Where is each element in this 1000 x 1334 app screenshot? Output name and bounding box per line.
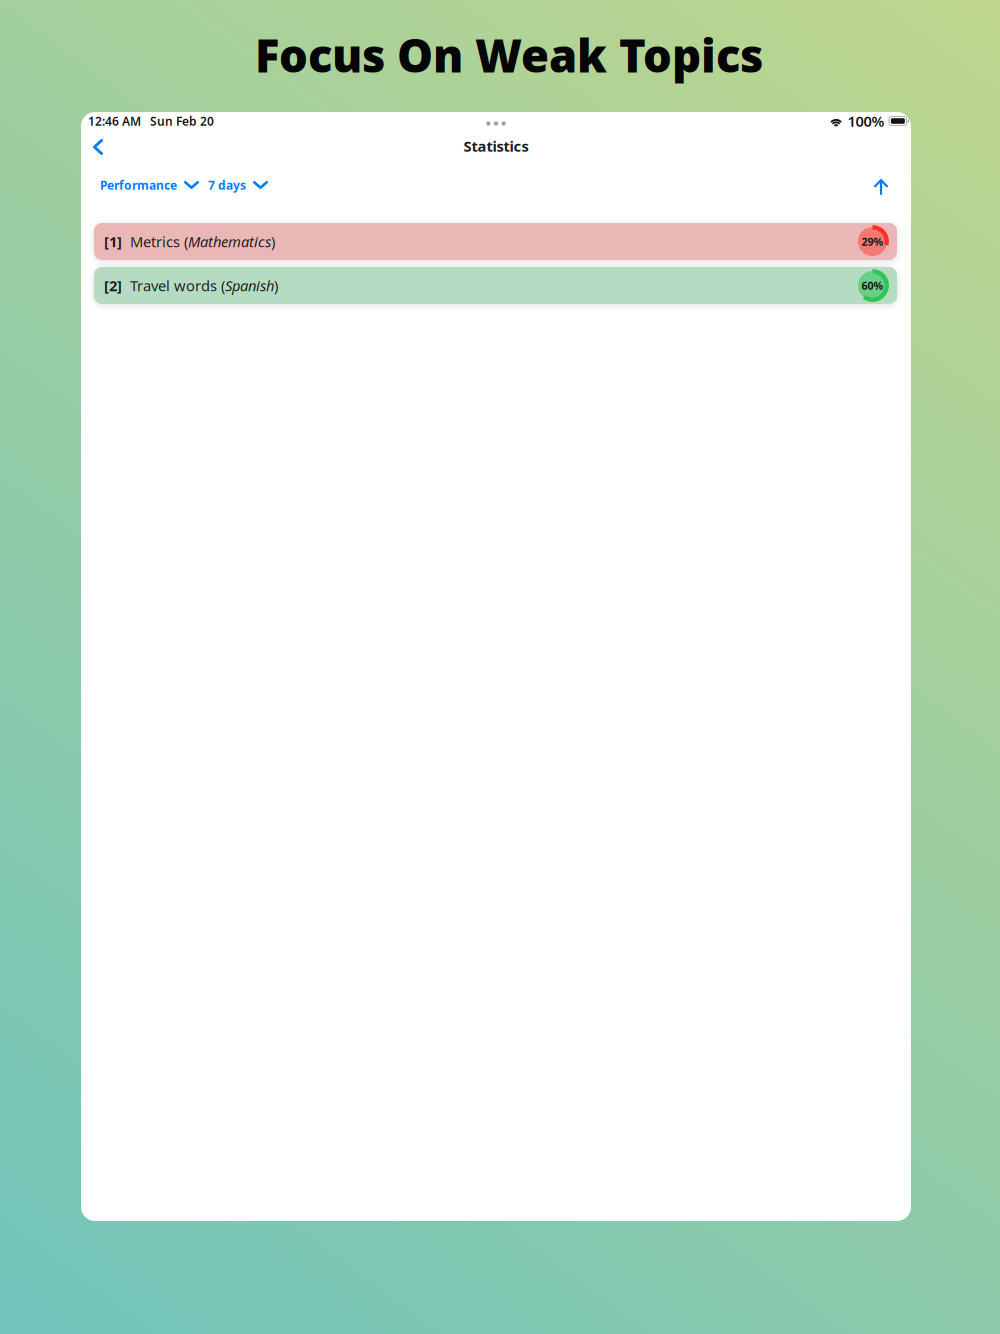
- staticText: 29%: [861, 234, 883, 249]
- staticText: Performance: [100, 177, 177, 193]
- staticText: ): [271, 232, 275, 251]
- staticText: [1]: [104, 232, 122, 251]
- staticText: [2]: [104, 276, 122, 295]
- staticText: Statistics: [463, 136, 528, 156]
- staticText: Metrics (: [130, 232, 188, 251]
- button[interactable]: Back: [82, 131, 114, 163]
- staticText: 12:46 AM: [88, 113, 141, 129]
- staticText: 7 days: [208, 177, 246, 193]
- button[interactable]: [2]: [94, 267, 897, 304]
- staticText: Travel words (: [130, 276, 225, 295]
- button[interactable]: [1]: [94, 223, 897, 260]
- button[interactable]: Performance: [98, 170, 208, 200]
- staticText: Mathematics: [188, 232, 271, 251]
- staticText: Focus On Weak Topics: [255, 25, 763, 85]
- button[interactable]: 7 days: [202, 170, 282, 200]
- staticText: 60%: [861, 278, 883, 293]
- staticText: Sun Feb 20: [150, 113, 214, 129]
- staticText: ): [274, 276, 278, 295]
- staticText: Spanish: [225, 276, 274, 295]
- button[interactable]: Sort ascending: [865, 171, 897, 203]
- staticText: 100%: [848, 111, 885, 131]
